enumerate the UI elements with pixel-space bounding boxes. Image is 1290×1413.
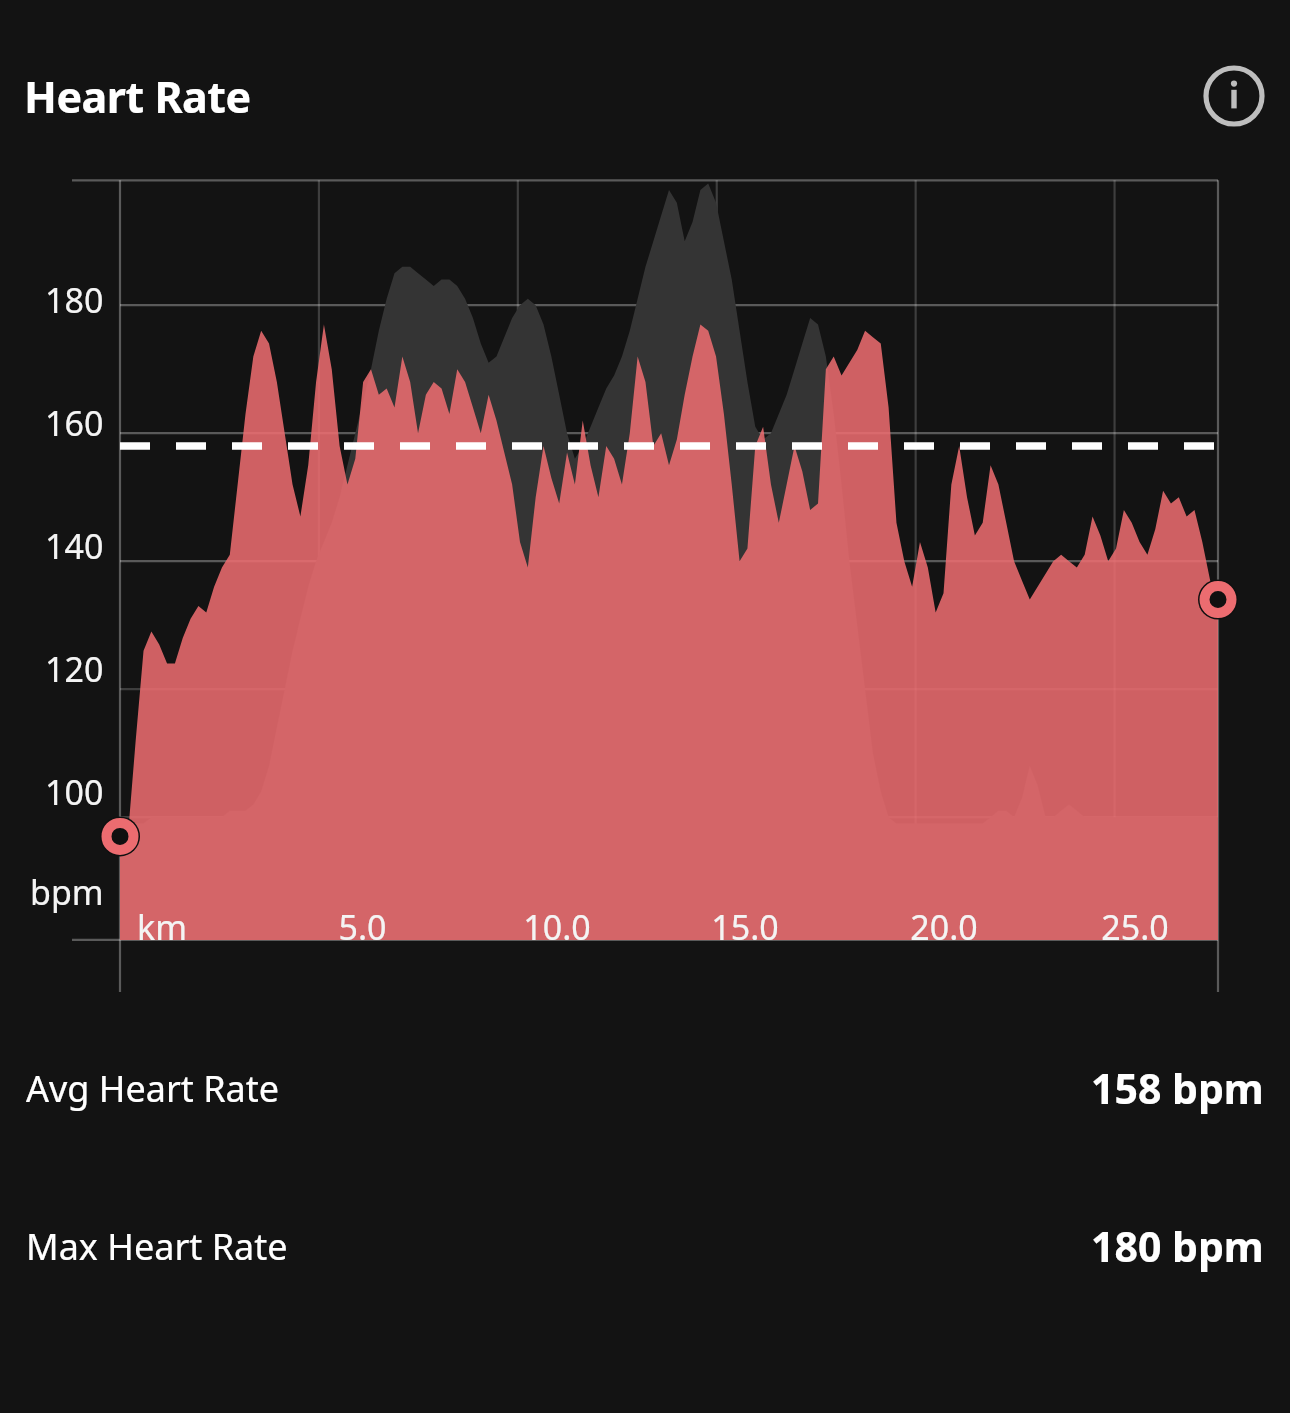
staticText: Avg Heart Rate xyxy=(26,1064,280,1113)
staticText: 180 xyxy=(45,277,104,323)
staticText: km xyxy=(137,904,187,950)
button[interactable]: Information xyxy=(1200,62,1268,130)
staticText: 160 xyxy=(45,400,104,446)
staticText: 25.0 xyxy=(1101,904,1169,950)
staticText: 15.0 xyxy=(711,904,779,950)
staticText: Heart Rate xyxy=(24,67,251,126)
staticText: 158 bpm xyxy=(1091,1060,1264,1116)
button[interactable]: Max Heart Rate xyxy=(0,1216,1290,1276)
button[interactable]: Avg Heart Rate xyxy=(0,1058,1290,1118)
staticText: 140 xyxy=(45,523,104,569)
staticText: 10.0 xyxy=(523,904,591,950)
staticText: bpm xyxy=(30,869,104,915)
staticText: 100 xyxy=(45,769,104,815)
staticText: 180 bpm xyxy=(1091,1218,1264,1274)
staticText: 20.0 xyxy=(910,904,978,950)
staticText: 5.0 xyxy=(338,904,387,950)
staticText: Max Heart Rate xyxy=(26,1222,288,1271)
staticText: 120 xyxy=(45,646,104,692)
